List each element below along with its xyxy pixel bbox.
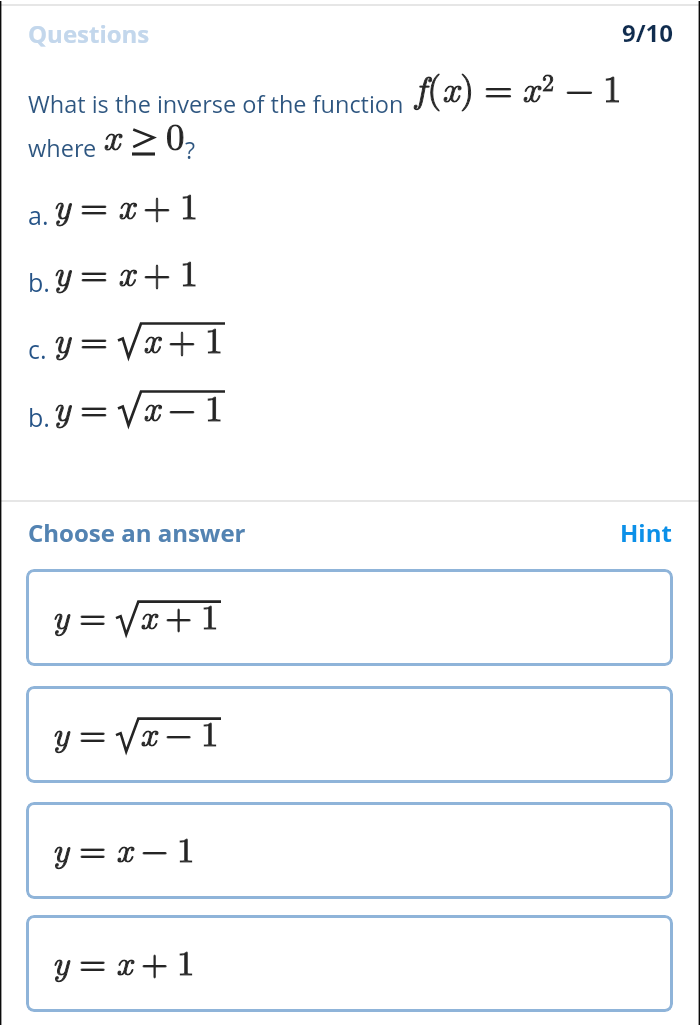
staticText: 1: [177, 936, 195, 986]
staticText: x: [143, 312, 160, 363]
staticText: ?: [185, 134, 196, 166]
staticText: =: [79, 707, 107, 757]
staticText: x: [143, 380, 160, 431]
staticText: What is the inverse of the function: [28, 88, 404, 120]
staticText: ): [460, 60, 475, 112]
staticText: =: [79, 707, 107, 757]
staticText: x: [103, 108, 121, 160]
staticText: x: [116, 936, 133, 986]
staticText: x: [143, 312, 160, 363]
staticText: y: [53, 245, 71, 296]
staticText: +: [141, 936, 169, 986]
staticText: a.: [28, 198, 49, 232]
button[interactable]: Hint: [620, 516, 672, 549]
staticText: =: [80, 312, 109, 363]
staticText: =: [484, 60, 513, 112]
staticText: f: [415, 60, 427, 112]
staticText: y: [52, 590, 70, 640]
staticText: =: [79, 936, 107, 986]
staticText: Choose an answer: [28, 516, 246, 549]
staticText: (: [427, 60, 442, 112]
staticText: 1: [201, 590, 219, 640]
staticText: y: [52, 936, 70, 986]
staticText: x: [118, 245, 135, 296]
staticText: 2: [542, 64, 554, 98]
staticText: 0: [166, 108, 185, 160]
staticText: −: [141, 823, 169, 873]
staticText: y: [52, 936, 70, 986]
staticText: 1: [180, 245, 198, 296]
staticText: +: [168, 312, 197, 363]
staticText: y: [53, 178, 71, 229]
staticText: =: [80, 312, 109, 363]
staticText: 2: [542, 64, 554, 98]
staticText: x: [103, 108, 121, 160]
staticText: +: [168, 312, 197, 363]
staticText: Questions: [28, 17, 150, 50]
staticText: f: [415, 60, 427, 112]
staticText: x: [442, 60, 460, 112]
staticText: −: [165, 707, 193, 757]
staticText: y: [53, 380, 71, 431]
staticText: −: [565, 60, 594, 112]
staticText: 1: [205, 312, 223, 363]
staticText: −: [165, 707, 193, 757]
staticText: 1: [201, 590, 219, 640]
staticText: +: [165, 590, 193, 640]
staticText: x: [116, 823, 133, 873]
staticText: x: [116, 823, 133, 873]
staticText: y: [53, 312, 71, 363]
staticText: where: [28, 132, 97, 164]
staticText: 1: [603, 60, 622, 112]
staticText: y: [52, 823, 70, 873]
staticText: y: [53, 245, 71, 296]
staticText: y: [52, 823, 70, 873]
staticText: x: [140, 707, 157, 757]
staticText: +: [143, 245, 172, 296]
staticText: x: [522, 60, 540, 112]
button[interactable]: y: [26, 802, 673, 899]
staticText: x: [118, 178, 135, 229]
button[interactable]: y: [26, 915, 673, 1012]
staticText: 1: [177, 936, 195, 986]
staticText: +: [165, 590, 193, 640]
staticText: −: [141, 823, 169, 873]
staticText: =: [484, 60, 513, 112]
staticText: =: [80, 178, 109, 229]
staticText: =: [79, 590, 107, 640]
button[interactable]: y: [26, 686, 673, 783]
staticText: 1: [205, 312, 223, 363]
staticText: +: [143, 245, 172, 296]
button[interactable]: Choose an answer: [28, 516, 246, 549]
staticText: +: [143, 178, 172, 229]
staticText: =: [79, 590, 107, 640]
staticText: 9/10: [622, 16, 674, 49]
staticText: x: [118, 178, 135, 229]
staticText: (: [427, 60, 442, 112]
staticText: y: [52, 707, 70, 757]
staticText: x: [140, 590, 157, 640]
staticText: −: [168, 380, 197, 431]
staticText: y: [52, 590, 70, 640]
staticText: x: [116, 936, 133, 986]
staticText: 1: [603, 60, 622, 112]
staticText: b.: [28, 400, 50, 434]
staticText: 1: [205, 380, 223, 431]
staticText: =: [79, 823, 107, 873]
staticText: =: [80, 245, 109, 296]
staticText: 1: [201, 707, 219, 757]
staticText: Hint: [620, 516, 672, 549]
staticText: 1: [201, 707, 219, 757]
staticText: =: [80, 178, 109, 229]
staticText: x: [140, 707, 157, 757]
staticText: ): [460, 60, 475, 112]
staticText: =: [79, 823, 107, 873]
staticText: c.: [28, 332, 47, 366]
staticText: =: [80, 380, 109, 431]
staticText: x: [522, 60, 540, 112]
staticText: x: [143, 380, 160, 431]
staticText: +: [141, 936, 169, 986]
button[interactable]: y: [26, 569, 673, 666]
staticText: x: [118, 245, 135, 296]
staticText: 1: [177, 823, 195, 873]
